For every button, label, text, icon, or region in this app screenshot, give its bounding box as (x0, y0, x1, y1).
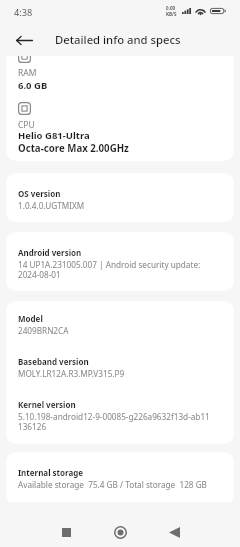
staticText: Android version (18, 247, 82, 258)
staticText: Internal storage (18, 467, 84, 478)
button[interactable]: Recents (52, 518, 80, 546)
button[interactable]: RAM (6, 56, 234, 161)
staticText: Helio G81-Ultra (18, 129, 90, 142)
staticText: 5.10.198-android12-9-00085-g226a9632f13d… (18, 412, 210, 432)
staticText: Octa-core Max 2.00GHz (18, 142, 129, 155)
staticText: OS version (18, 188, 61, 199)
button[interactable]: Baseband version (6, 346, 234, 389)
staticText: 6.0 GB (18, 79, 48, 92)
staticText: 2409BRN2CA (18, 326, 69, 336)
button[interactable]: Internal storage (6, 452, 234, 502)
staticText: Available storage 75.4 GB / Total storag… (18, 480, 207, 490)
staticText: Baseband version (18, 356, 89, 367)
button[interactable]: Back (10, 26, 38, 54)
button[interactable]: Back (160, 518, 188, 546)
staticText: Kernel version (18, 399, 76, 410)
staticText: 1.0.4.0.UGTMIXM (18, 201, 85, 211)
staticText: MOLY.LR12A.R3.MP.V315.P9 (18, 369, 125, 379)
button[interactable]: Model (6, 303, 234, 346)
staticText: RAM (18, 67, 37, 79)
staticText: 14 UP1A.231005.007 | Android security up… (18, 260, 201, 280)
button[interactable]: Android version (6, 232, 234, 291)
staticText: Model (18, 313, 43, 324)
staticText: Detailed info and specs (55, 32, 181, 47)
staticText: CPU (18, 119, 35, 129)
staticText: 0.00 (166, 5, 176, 11)
button[interactable]: Home (106, 518, 134, 546)
staticText: KB/S (166, 11, 177, 17)
staticText: 4:38 (14, 6, 33, 19)
button[interactable]: OS version (6, 173, 234, 222)
button[interactable]: Kernel version (6, 389, 234, 442)
